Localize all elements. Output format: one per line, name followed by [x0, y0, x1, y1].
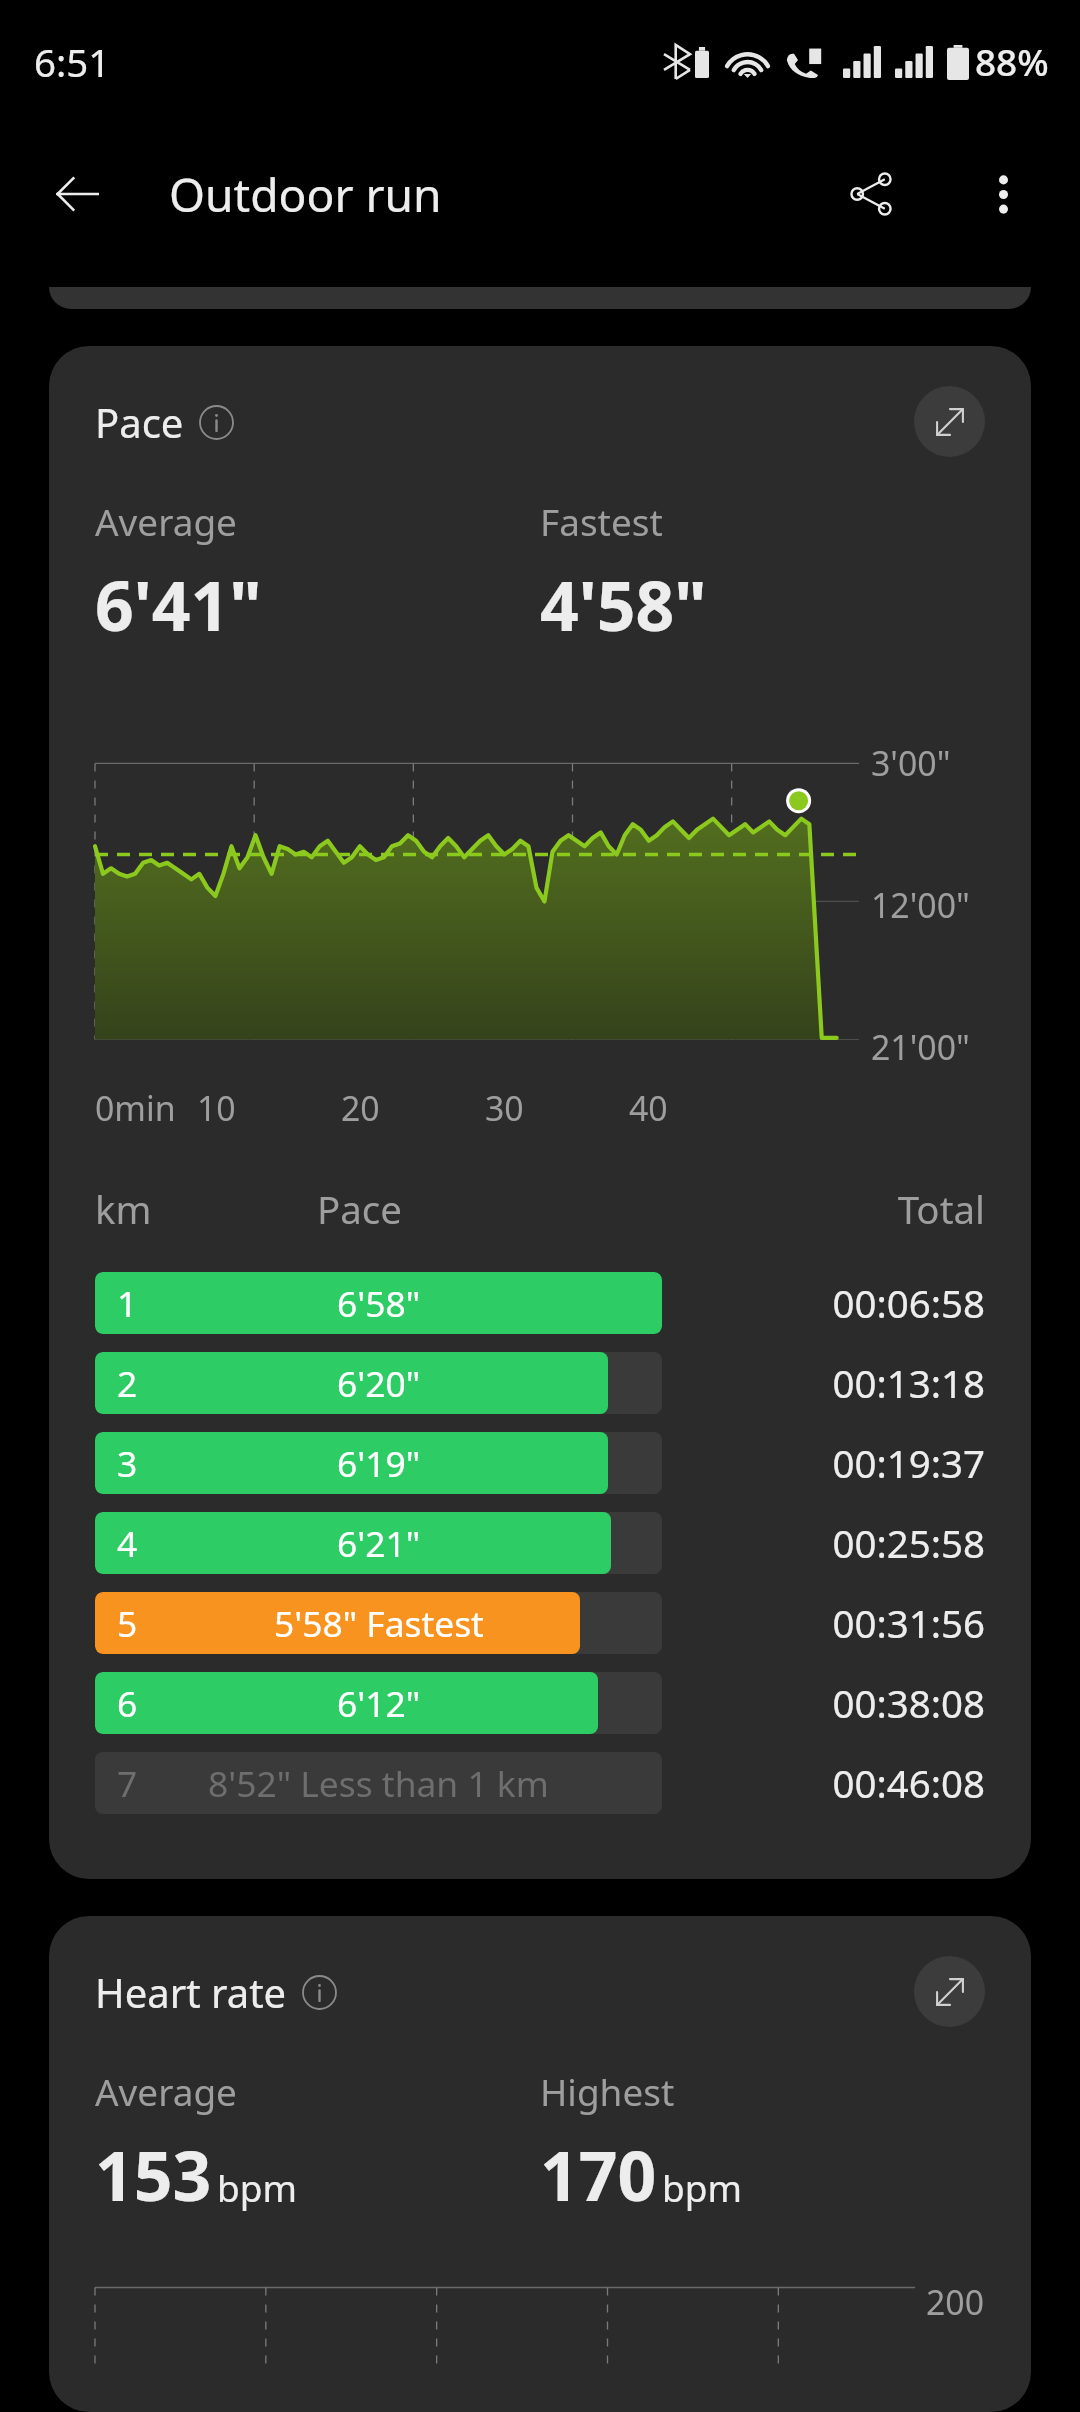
staticText: 3 — [117, 1439, 138, 1487]
button[interactable]: 2 — [95, 1352, 985, 1414]
button[interactable]: Expand — [914, 1956, 985, 2027]
staticText: 5'58" Fastest — [274, 1599, 484, 1647]
staticText: 8'52" Less than 1 km — [208, 1759, 549, 1807]
staticText: 0min — [95, 1085, 176, 1131]
staticText: 6'12" — [337, 1679, 421, 1727]
button[interactable]: Heart rate — [95, 1965, 337, 2019]
staticText: 3'00" — [871, 740, 951, 786]
button[interactable]: Back — [34, 151, 120, 237]
staticText: 88% — [975, 37, 1049, 87]
staticText: Heart rate — [95, 1965, 287, 2019]
staticText: 6'21" — [337, 1519, 421, 1567]
button[interactable]: 3 — [95, 1432, 985, 1494]
staticText: 4 — [117, 1519, 138, 1567]
staticText: 6'19" — [337, 1439, 421, 1487]
staticText: 5 — [117, 1599, 138, 1647]
staticText: 153 — [95, 2129, 212, 2221]
staticText: 7 — [117, 1759, 138, 1807]
staticText: bpm — [217, 2163, 297, 2213]
staticText: Pace — [317, 1183, 673, 1235]
staticText: Outdoor run — [169, 163, 442, 226]
staticText: 4'58" — [540, 559, 707, 651]
staticText: Fastest — [540, 497, 663, 547]
staticText: 00:19:37 — [690, 1437, 985, 1489]
staticText: 30 — [485, 1085, 524, 1131]
staticText: Pace — [95, 395, 184, 449]
staticText: 00:13:18 — [690, 1357, 985, 1409]
staticText: bpm — [662, 2163, 742, 2213]
staticText: Average — [95, 497, 237, 547]
staticText: km — [95, 1183, 317, 1235]
staticText: 00:38:08 — [690, 1677, 985, 1729]
staticText: 6'41" — [95, 559, 262, 651]
staticText: Highest — [540, 2067, 675, 2117]
staticText: 10 — [197, 1085, 236, 1131]
button[interactable]: More options — [960, 151, 1046, 237]
staticText: 6'58" — [337, 1279, 421, 1327]
staticText: 00:25:58 — [690, 1517, 985, 1569]
staticText: 00:31:56 — [690, 1597, 985, 1649]
staticText: 00:46:08 — [690, 1757, 985, 1809]
button[interactable]: 6 — [95, 1672, 985, 1734]
button[interactable]: 5 — [95, 1592, 985, 1654]
staticText: Total — [673, 1183, 985, 1235]
staticText: 00:06:58 — [690, 1277, 985, 1329]
button[interactable]: Pace — [95, 395, 234, 449]
staticText: 1 — [117, 1279, 138, 1327]
button[interactable]: 1 — [95, 1272, 985, 1334]
staticText: 2 — [117, 1359, 138, 1407]
button[interactable]: Expand — [914, 386, 985, 457]
button[interactable]: 4 — [95, 1512, 985, 1574]
staticText: 40 — [629, 1085, 668, 1131]
button[interactable]: 7 — [95, 1752, 985, 1814]
staticText: Average — [95, 2067, 237, 2117]
staticText: 6'20" — [337, 1359, 421, 1407]
button[interactable]: Share — [828, 151, 914, 237]
staticText: 170 — [540, 2129, 657, 2221]
staticText: 6:51 — [34, 36, 111, 88]
staticText: 200 — [926, 2279, 985, 2325]
staticText: 6 — [117, 1679, 138, 1727]
staticText: 21'00" — [871, 1024, 970, 1070]
staticText: 20 — [341, 1085, 380, 1131]
staticText: 12'00" — [871, 882, 970, 928]
